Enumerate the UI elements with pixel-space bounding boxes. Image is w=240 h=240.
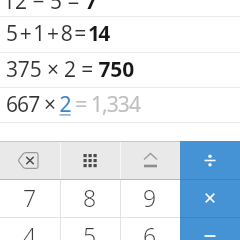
staticText: 9	[143, 182, 157, 213]
button[interactable]	[180, 180, 240, 217]
staticText: 667 × 2 = 1,334	[6, 90, 141, 119]
staticText: 12 − 5 = 7	[3, 0, 97, 16]
staticText: 8	[83, 182, 97, 213]
button[interactable]: 9	[120, 178, 180, 216]
button[interactable]: 7	[0, 178, 60, 216]
staticText: 6	[143, 220, 157, 240]
button[interactable]: 4	[0, 216, 60, 240]
staticText: 4	[23, 220, 37, 240]
button[interactable]	[60, 142, 120, 179]
button[interactable]: 6	[120, 216, 180, 240]
button[interactable]: 5	[60, 216, 120, 240]
button[interactable]: 5 + 1 + 8 = 14	[6, 15, 240, 51]
button[interactable]	[120, 142, 180, 179]
button[interactable]: 375 × 2 = 750	[6, 51, 240, 87]
button[interactable]: 12 − 5 = 7	[3, 0, 240, 19]
button[interactable]	[180, 218, 240, 240]
button[interactable]	[180, 142, 240, 179]
staticText: 5 + 1 + 8 = 14	[6, 19, 109, 48]
staticText: 5	[83, 220, 97, 240]
button[interactable]: 667 × 2 = 1,334	[6, 86, 240, 122]
button[interactable]	[0, 142, 60, 179]
button[interactable]: 8	[60, 178, 120, 216]
staticText: 7	[23, 182, 37, 213]
staticText: 375 × 2 = 750	[6, 55, 134, 84]
